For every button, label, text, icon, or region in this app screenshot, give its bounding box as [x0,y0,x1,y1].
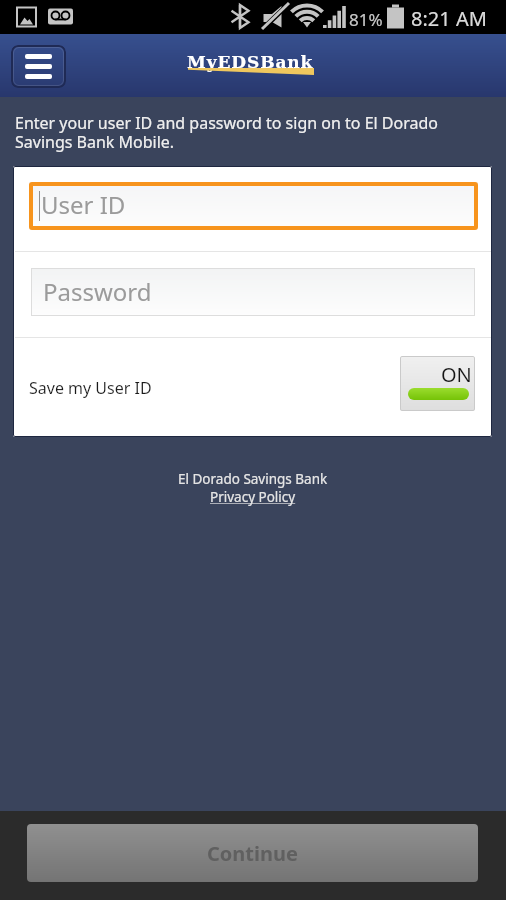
staticText: Enter your user ID and password to sign … [15,112,455,153]
staticText: Password [43,275,152,308]
staticText: ON [441,361,472,388]
button[interactable]: User ID [29,182,478,230]
button[interactable]: Save my User ID [13,338,492,437]
staticText: 8:21 AM [411,5,487,32]
button[interactable]: Continue [27,824,478,882]
staticText: El Dorado Savings Bank [178,470,328,488]
staticText: Continue [207,840,298,867]
button[interactable]: Open navigation menu [13,47,64,86]
staticText: Save my User ID [29,377,152,399]
staticText: User ID [41,188,126,221]
button[interactable]: Password [31,268,475,316]
staticText: Privacy Policy [210,488,296,506]
button[interactable]: Privacy Policy [210,488,296,506]
staticText: 81% [349,8,383,31]
staticText: MyEDSBank [187,52,314,72]
button[interactable]: Save my User ID toggle, on [400,356,475,411]
